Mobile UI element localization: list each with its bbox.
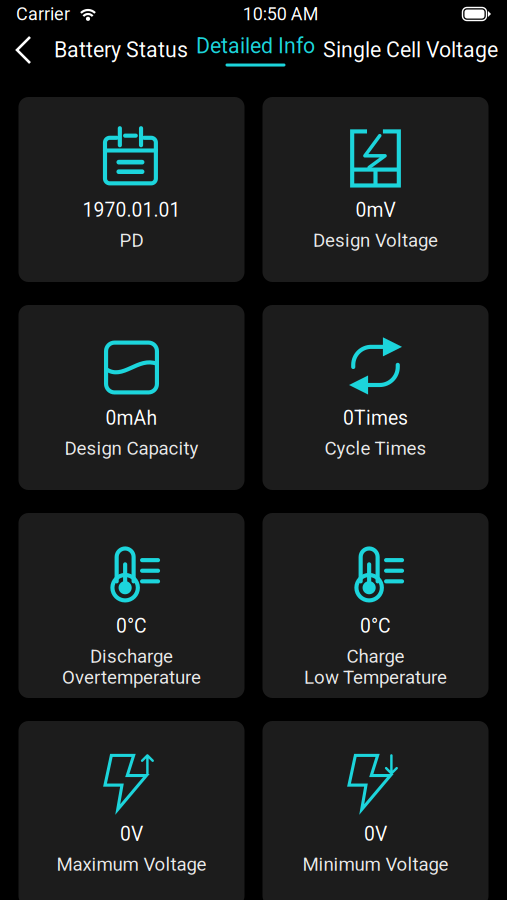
staticText: Single Cell Voltage — [323, 37, 498, 62]
staticText: 0V — [364, 823, 387, 845]
staticText: PD — [119, 229, 143, 251]
staticText: 0mV — [355, 199, 395, 221]
staticText: Detailed Info — [196, 33, 315, 58]
staticText: Low Temperature — [304, 666, 447, 688]
staticText: Carrier — [16, 3, 70, 25]
button[interactable]: 0V — [18, 721, 244, 900]
button[interactable]: Back — [10, 32, 38, 68]
staticText: 0°C — [116, 615, 147, 637]
staticText: 10:50 AM — [243, 3, 319, 25]
staticText: Cycle Times — [324, 437, 426, 459]
button[interactable]: 0mAh — [18, 305, 244, 490]
staticText: 0mAh — [105, 407, 157, 429]
button[interactable]: 0°C — [18, 513, 244, 698]
staticText: 0°C — [360, 615, 391, 637]
staticText: Overtemperature — [62, 666, 201, 688]
button[interactable]: 1970.01.01 — [18, 97, 244, 282]
staticText: Design Voltage — [313, 229, 438, 251]
staticText: Discharge — [90, 645, 173, 667]
button[interactable]: 0°C — [262, 513, 488, 698]
staticText: 0Times — [343, 407, 408, 429]
button[interactable]: 0Times — [262, 305, 488, 490]
staticText: Charge — [346, 645, 404, 667]
staticText: Minimum Voltage — [302, 853, 448, 875]
staticText: Design Capacity — [64, 437, 198, 459]
button[interactable]: Single Cell Voltage — [323, 37, 498, 62]
button[interactable]: Detailed Info — [196, 33, 315, 66]
button[interactable]: 0mV — [262, 97, 488, 282]
staticText: 1970.01.01 — [82, 199, 180, 221]
staticText: Battery Status — [54, 37, 188, 62]
staticText: Maximum Voltage — [56, 853, 206, 875]
button[interactable]: Battery Status — [54, 37, 188, 62]
staticText: 0V — [120, 823, 143, 845]
button[interactable]: 0V — [262, 721, 488, 900]
